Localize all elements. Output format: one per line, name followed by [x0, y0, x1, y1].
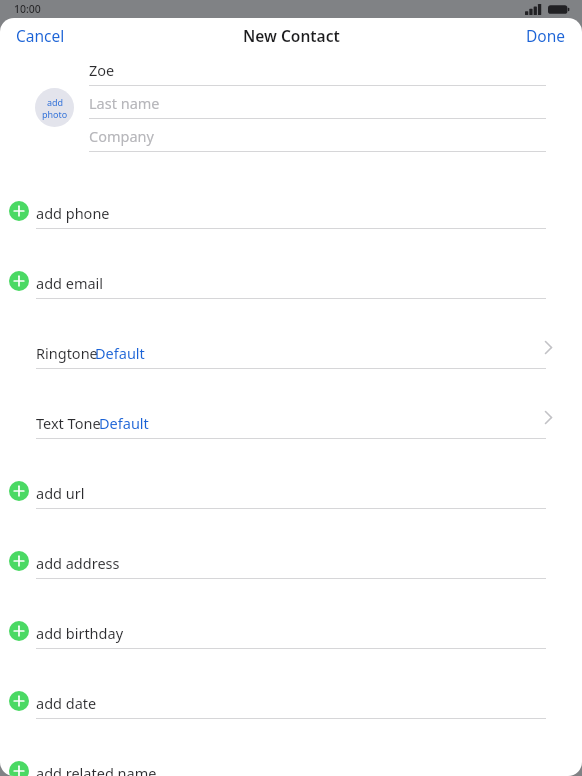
button[interactable]: Cancel — [0, 19, 81, 52]
staticText: add phone — [36, 203, 110, 223]
staticText: add related name — [36, 763, 157, 776]
staticText: Cancel — [16, 25, 65, 46]
staticText: Company — [89, 126, 154, 146]
staticText: add email — [36, 273, 104, 293]
button[interactable]: Done — [510, 19, 582, 52]
staticText: add url — [36, 483, 85, 503]
staticText: add date — [36, 693, 97, 713]
button[interactable]: Text Tone — [0, 387, 582, 457]
staticText: Default — [99, 413, 149, 433]
staticText: Done — [526, 25, 566, 46]
button[interactable]: Last name — [89, 86, 546, 118]
button[interactable]: Company — [89, 119, 546, 151]
button[interactable]: Add photo — [35, 88, 74, 127]
staticText: add birthday — [36, 623, 124, 643]
staticText: add address — [36, 553, 120, 573]
staticText: add — [47, 96, 64, 108]
button[interactable]: add url — [0, 457, 582, 527]
staticText: photo — [42, 108, 68, 120]
staticText: 10:00 — [14, 2, 41, 16]
staticText: Ringtone — [36, 343, 98, 363]
button[interactable]: add address — [0, 527, 582, 597]
staticText: Text Tone — [36, 413, 101, 433]
button[interactable]: add email — [0, 247, 582, 317]
button[interactable]: add date — [0, 667, 582, 737]
button[interactable]: add related name — [0, 737, 582, 776]
staticText: New Contact — [243, 25, 340, 46]
button[interactable]: add phone — [0, 177, 582, 247]
button[interactable]: Ringtone — [0, 317, 582, 387]
button[interactable]: add birthday — [0, 597, 582, 667]
staticText: Zoe — [89, 60, 115, 80]
staticText: Last name — [89, 93, 160, 113]
button[interactable]: Zoe — [89, 53, 546, 85]
staticText: Default — [95, 343, 145, 363]
